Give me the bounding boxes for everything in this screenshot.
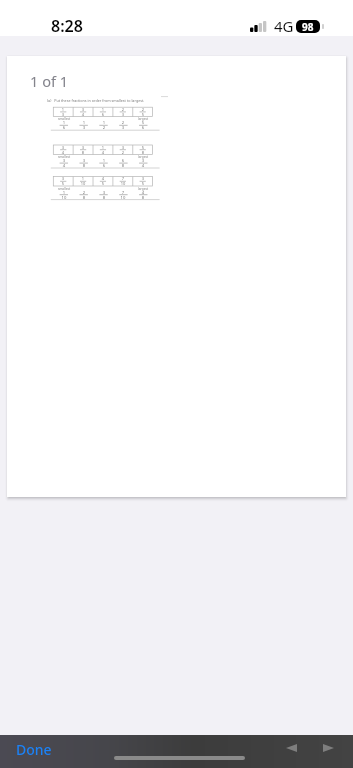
- staticText: 3: [137, 176, 149, 181]
- staticText: 6: [97, 112, 109, 117]
- staticText: largest: [138, 117, 149, 121]
- staticText: 8: [98, 195, 110, 201]
- staticText: 7: [117, 190, 129, 196]
- button[interactable]: Done: [0, 738, 68, 765]
- staticText: Done: [16, 740, 52, 759]
- staticText: 8: [77, 150, 89, 155]
- staticText: 10: [77, 181, 89, 186]
- staticText: 6: [117, 158, 129, 164]
- staticText: smallest: [58, 155, 71, 159]
- staticText: 3: [98, 190, 110, 196]
- staticText: 3: [57, 112, 69, 117]
- staticText: 98: [302, 20, 314, 33]
- staticText: 3: [57, 145, 69, 150]
- staticText: 6: [137, 125, 149, 131]
- staticText: 1: [98, 120, 110, 126]
- staticText: 5: [57, 181, 69, 186]
- staticText: 4: [77, 112, 89, 117]
- button[interactable]: Next page: [322, 740, 334, 756]
- staticText: 3: [57, 176, 69, 181]
- staticText: 8: [137, 195, 149, 201]
- staticText: 1: [78, 120, 90, 126]
- staticText: 3: [117, 125, 129, 131]
- staticText: 3: [117, 112, 129, 117]
- staticText: 5: [137, 181, 149, 186]
- staticText: 8: [78, 163, 90, 169]
- staticText: 8: [78, 195, 90, 201]
- staticText: 4: [57, 150, 69, 155]
- staticText: 4: [137, 163, 149, 169]
- staticText: 6: [58, 125, 70, 131]
- staticText: 5: [137, 120, 149, 126]
- staticText: 2: [117, 107, 129, 112]
- staticText: 4: [58, 163, 70, 169]
- button[interactable]: Previous page: [285, 740, 297, 756]
- staticText: 1: [98, 158, 110, 164]
- staticText: 1 of 1: [30, 71, 69, 91]
- staticText: 1: [57, 107, 69, 112]
- staticText: 5: [137, 145, 149, 150]
- staticText: 8: [117, 163, 129, 169]
- staticText: 10: [117, 181, 129, 186]
- staticText: 2: [117, 150, 129, 155]
- staticText: 1: [58, 190, 70, 196]
- staticText: 7: [117, 176, 129, 181]
- staticText: 10: [58, 195, 70, 201]
- staticText: 5: [137, 112, 149, 117]
- staticText: 3: [137, 158, 149, 164]
- staticText: largest: [138, 155, 149, 159]
- button[interactable]: 1 of 1: [7, 56, 346, 497]
- staticText: 3: [77, 145, 89, 150]
- staticText: 1: [58, 120, 70, 126]
- staticText: 6: [98, 163, 110, 169]
- staticText: 5: [97, 181, 109, 186]
- staticText: 2: [117, 120, 129, 126]
- staticText: 4G: [274, 16, 294, 36]
- staticText: 2: [137, 107, 149, 112]
- staticText: 1: [97, 145, 109, 150]
- staticText: 2: [78, 190, 90, 196]
- staticText: (a) Put these fractions in order from sm…: [47, 98, 145, 103]
- staticText: 3: [77, 107, 89, 112]
- staticText: largest: [138, 187, 149, 191]
- staticText: 3: [78, 125, 90, 131]
- staticText: 3: [117, 145, 129, 150]
- staticText: smallest: [58, 117, 71, 121]
- staticText: 8: [137, 150, 149, 155]
- staticText: 3: [78, 158, 90, 164]
- staticText: 10: [117, 195, 129, 201]
- staticText: smallest: [58, 187, 71, 191]
- staticText: 1: [97, 107, 109, 112]
- staticText: 2: [98, 125, 110, 131]
- staticText: 8:28: [51, 15, 83, 37]
- staticText: 4: [137, 190, 149, 196]
- staticText: 4: [97, 176, 109, 181]
- staticText: 3: [58, 158, 70, 164]
- staticText: 4: [97, 150, 109, 155]
- staticText: 1: [77, 176, 89, 181]
